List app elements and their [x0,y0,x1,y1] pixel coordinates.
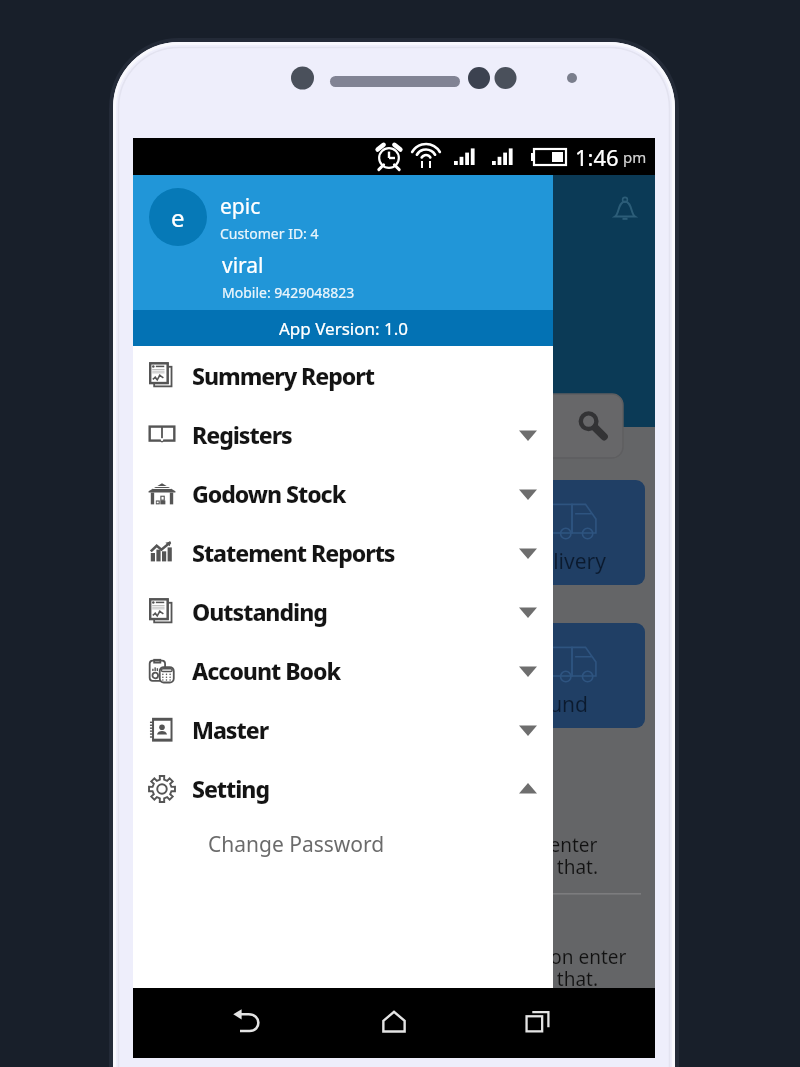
staticText: wer enter [511,832,598,858]
staticText: Master [192,714,269,745]
staticText: Mobile: 9429048823 [222,283,355,302]
button[interactable]: Outstanding [133,582,553,641]
button[interactable]: Change Password [133,818,553,870]
staticText: Outstanding [192,596,327,627]
staticText: pm [623,147,647,167]
button[interactable]: Delivery [429,480,645,585]
staticText: Statement Reports [192,537,395,568]
staticText: Setting [192,773,270,804]
button[interactable]: Account Book [133,641,553,700]
staticText: uestion enter [507,944,627,970]
staticText: epic [220,192,261,221]
button[interactable]: Registers [133,405,553,464]
staticText: 1:46 [575,142,619,172]
button[interactable]: Summery Report [133,346,553,405]
staticText: Registers [192,419,292,450]
button[interactable]: Setting [133,759,553,818]
staticText: Godown Stock [192,478,346,509]
staticText: Refund [517,690,589,719]
button[interactable]: Godown Stock [133,464,553,523]
staticText: Summery Report [192,360,374,391]
button[interactable]: Refund [429,623,645,728]
button[interactable]: Home [366,994,422,1050]
button[interactable]: Master [133,700,553,759]
staticText: r that. [544,966,598,992]
staticText: Delivery [526,547,606,576]
button[interactable]: Recents [510,994,566,1050]
staticText: App Version: 1.0 [279,317,408,340]
staticText: r that. [544,854,598,880]
button[interactable]: Statement Reports [133,523,553,582]
staticText: Change Password [208,830,385,859]
staticText: Account Book [192,655,341,686]
staticText: Customer ID: 4 [220,224,319,243]
button[interactable]: Back [220,994,276,1050]
staticText: e [171,201,185,234]
staticText: viral [222,251,264,280]
